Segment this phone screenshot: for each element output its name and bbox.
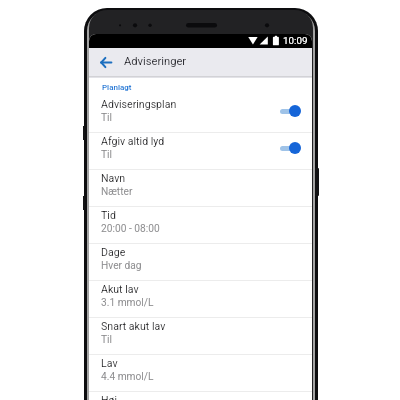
staticText: 3.1 mmol/L <box>101 297 154 309</box>
staticText: Planlagt <box>102 83 132 92</box>
button[interactable]: Afgiv altid lyd <box>89 133 312 169</box>
staticText: Til <box>101 149 113 161</box>
button[interactable]: Navn <box>89 170 312 206</box>
staticText: Til <box>101 112 113 124</box>
button[interactable]: Snart akut lav <box>89 318 312 354</box>
staticText: Navn <box>101 172 126 184</box>
staticText: Høj <box>101 394 118 400</box>
staticText: Til <box>101 334 113 346</box>
button[interactable]: Adviseringsplan <box>89 96 312 132</box>
staticText: Akut lav <box>101 283 139 295</box>
button[interactable]: Toggle <box>280 105 301 117</box>
staticText: Dage <box>101 246 126 258</box>
staticText: Hver dag <box>101 260 142 272</box>
button[interactable]: Toggle <box>280 142 301 154</box>
staticText: Lav <box>101 357 118 369</box>
staticText: Adviseringer <box>124 55 187 68</box>
staticText: Snart akut lav <box>101 320 166 332</box>
staticText: Afgiv altid lyd <box>101 135 165 147</box>
button[interactable]: Lav <box>89 355 312 391</box>
staticText: Tid <box>101 209 116 221</box>
staticText: Adviseringsplan <box>101 98 177 110</box>
button[interactable]: Høj <box>89 392 312 400</box>
button[interactable]: Back <box>95 51 117 73</box>
button[interactable]: Akut lav <box>89 281 312 317</box>
button[interactable]: Tid <box>89 207 312 243</box>
staticText: Nætter <box>101 186 133 198</box>
staticText: 20:00 - 08:00 <box>101 223 160 235</box>
staticText: 4.4 mmol/L <box>101 371 154 383</box>
staticText: 10:09 <box>283 35 308 46</box>
button[interactable]: Dage <box>89 244 312 280</box>
